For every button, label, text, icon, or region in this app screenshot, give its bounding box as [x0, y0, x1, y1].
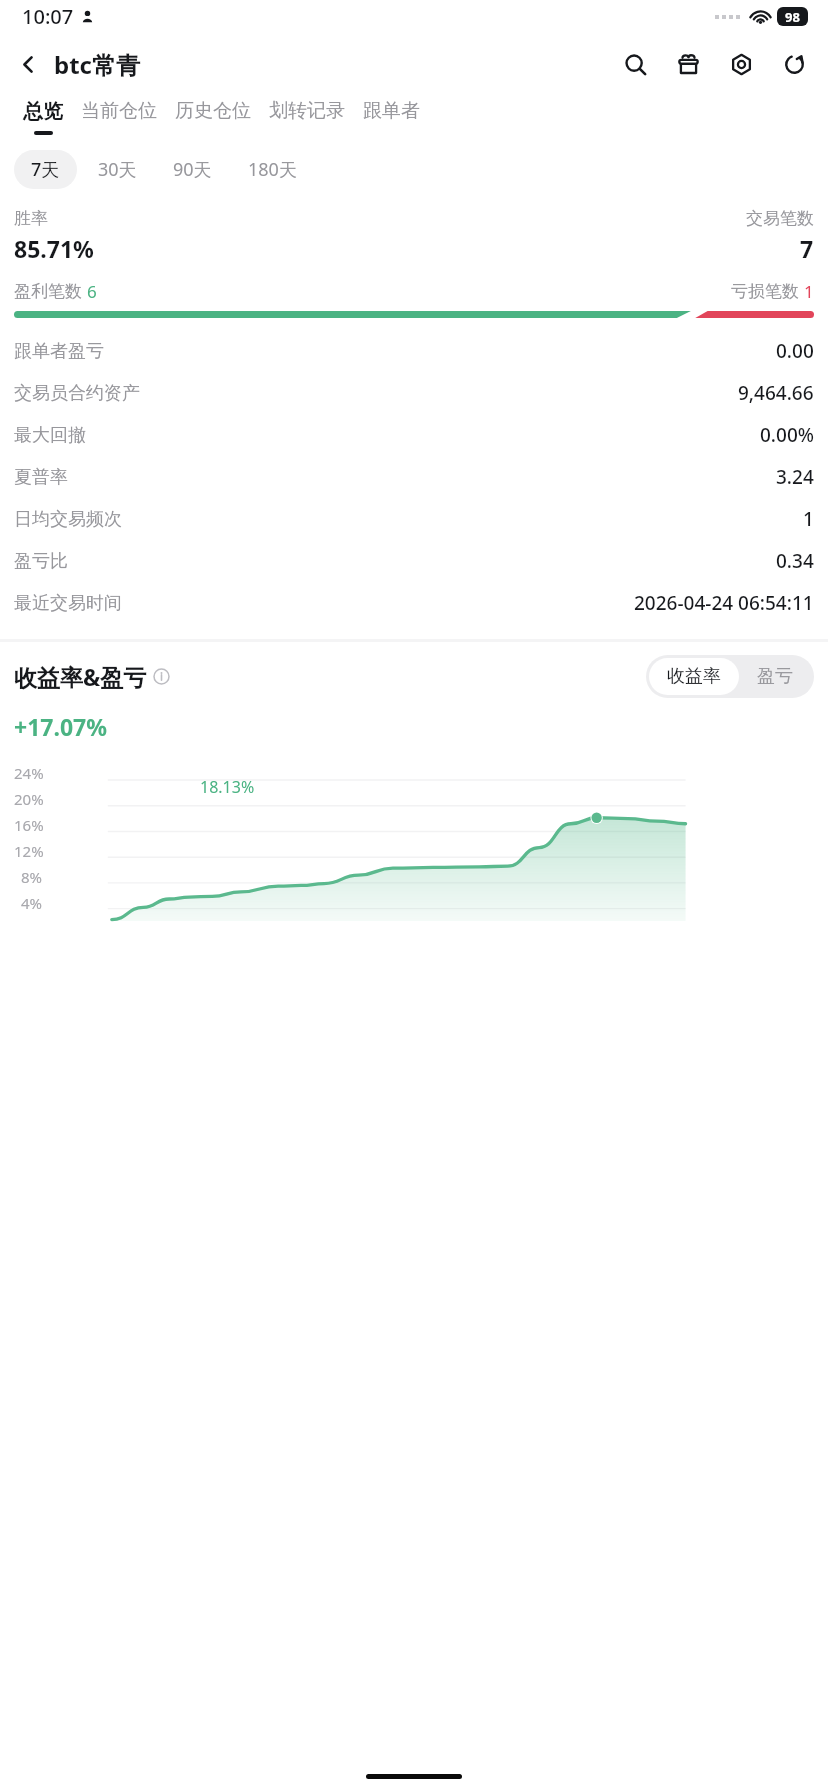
staticText: 90天	[173, 157, 212, 182]
staticText: 历史仓位	[175, 99, 251, 123]
staticText: 18.13%	[200, 776, 255, 798]
staticText: 亏损笔数	[731, 281, 799, 302]
staticText: 跟单者	[363, 99, 420, 123]
staticText: 收益率&盈亏	[14, 661, 147, 692]
staticText: 9,464.66	[738, 380, 814, 406]
staticText: 180天	[248, 157, 297, 182]
staticText: 盈利笔数	[14, 281, 82, 302]
staticText: 总览	[23, 99, 63, 124]
button[interactable]: 跟单者	[354, 95, 429, 138]
staticText: 30天	[98, 157, 137, 182]
staticText: 8%	[21, 867, 43, 887]
button[interactable]: 最大回撤	[0, 414, 828, 456]
staticText: 16%	[14, 815, 44, 835]
staticText: 夏普率	[14, 466, 68, 489]
staticText: 盈亏比	[14, 550, 68, 573]
button[interactable]: Share	[774, 44, 814, 84]
button[interactable]: 最近交易时间	[0, 582, 828, 624]
button[interactable]: 划转记录	[260, 95, 354, 138]
staticText: 0.00%	[760, 422, 814, 448]
staticText: 3.24	[776, 464, 814, 490]
staticText: 胜率	[14, 208, 48, 229]
staticText: 7	[800, 233, 814, 264]
button[interactable]: 收益率	[649, 658, 739, 695]
staticText: 跟单者盈亏	[14, 340, 104, 363]
button[interactable]: 跟单者盈亏	[0, 330, 828, 372]
staticText: 划转记录	[269, 99, 345, 123]
button[interactable]: Back	[10, 46, 46, 82]
staticText: 20%	[14, 789, 44, 809]
staticText: 0.34	[776, 548, 814, 574]
button[interactable]: 历史仓位	[166, 95, 260, 138]
staticText: 85.71%	[14, 233, 94, 264]
staticText: 98	[785, 8, 800, 26]
button[interactable]: 30天	[83, 150, 152, 189]
button[interactable]: 夏普率	[0, 456, 828, 498]
button[interactable]: Search	[615, 44, 655, 84]
staticText: 7天	[31, 157, 60, 182]
button[interactable]: 当前仓位	[72, 95, 166, 138]
staticText: 1	[804, 280, 814, 303]
staticText: 当前仓位	[81, 99, 157, 123]
button[interactable]: 交易员合约资产	[0, 372, 828, 414]
button[interactable]: Gifts	[668, 44, 708, 84]
button[interactable]: Settings	[721, 44, 761, 84]
staticText: 交易员合约资产	[14, 382, 140, 405]
staticText: 最大回撤	[14, 424, 86, 447]
button[interactable]: 盈亏	[739, 658, 811, 695]
button[interactable]: Info	[153, 668, 170, 685]
staticText: 收益率	[667, 665, 721, 688]
button[interactable]: 90天	[158, 150, 227, 189]
staticText: 盈亏	[757, 665, 793, 688]
staticText: 1	[803, 506, 814, 532]
staticText: 12%	[14, 841, 44, 861]
staticText: 日均交易频次	[14, 508, 122, 531]
staticText: 4%	[21, 893, 43, 913]
staticText: 10:07	[22, 3, 74, 30]
staticText: 交易笔数	[746, 208, 814, 229]
button[interactable]: 盈亏比	[0, 540, 828, 582]
button[interactable]: 180天	[233, 150, 312, 189]
button[interactable]: 总览	[14, 95, 72, 139]
staticText: 6	[87, 280, 97, 303]
staticText: +17.07%	[14, 711, 107, 742]
button[interactable]: 7天	[14, 150, 77, 189]
button[interactable]: 日均交易频次	[0, 498, 828, 540]
staticText: 2026-04-24 06:54:11	[634, 590, 814, 616]
staticText: 0.00	[776, 338, 814, 364]
staticText: 最近交易时间	[14, 592, 122, 615]
staticText: 24%	[14, 763, 44, 783]
staticText: btc常青	[54, 48, 140, 81]
